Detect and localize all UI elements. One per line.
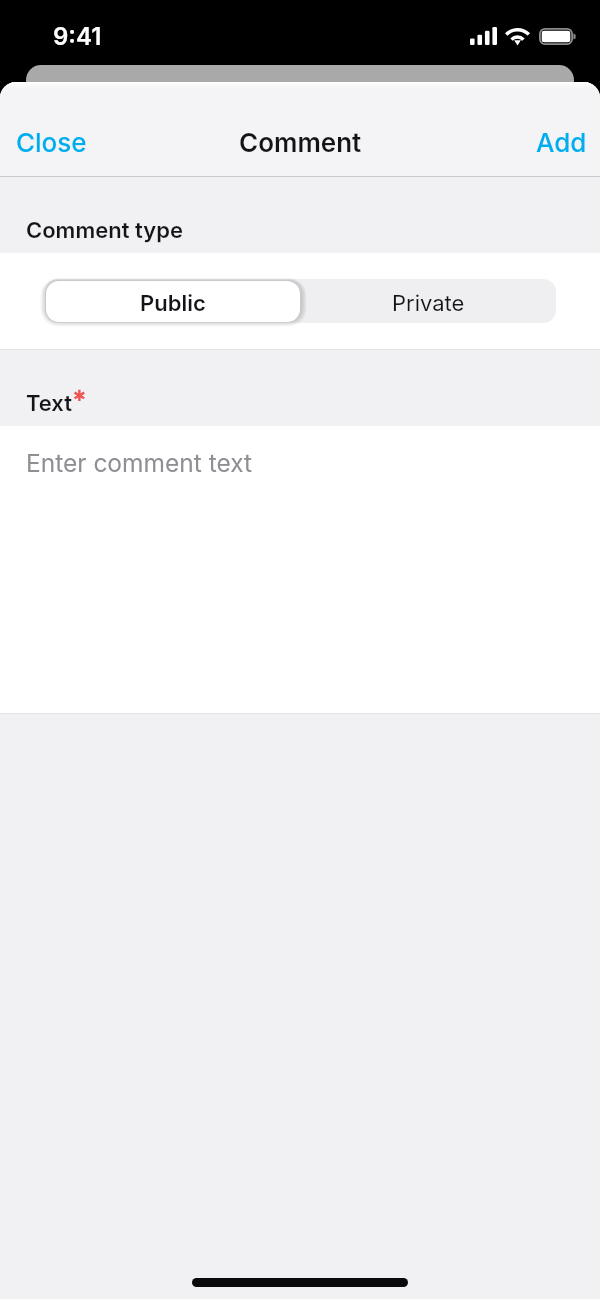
staticText: Enter comment text (26, 448, 253, 478)
button[interactable]: Enter comment text (0, 426, 600, 713)
staticText: Private (392, 290, 465, 317)
staticText: Comment type (26, 217, 183, 244)
staticText: Close (16, 127, 87, 158)
button[interactable]: Private (300, 279, 556, 323)
staticText: Text (26, 390, 72, 417)
staticText: Comment (239, 127, 362, 158)
staticText: Add (536, 127, 587, 158)
staticText: 9:41 (53, 22, 102, 51)
button[interactable]: Public (46, 281, 300, 322)
button[interactable]: Add (516, 119, 600, 166)
staticText: Public (140, 290, 206, 317)
button[interactable]: Close (0, 119, 107, 166)
